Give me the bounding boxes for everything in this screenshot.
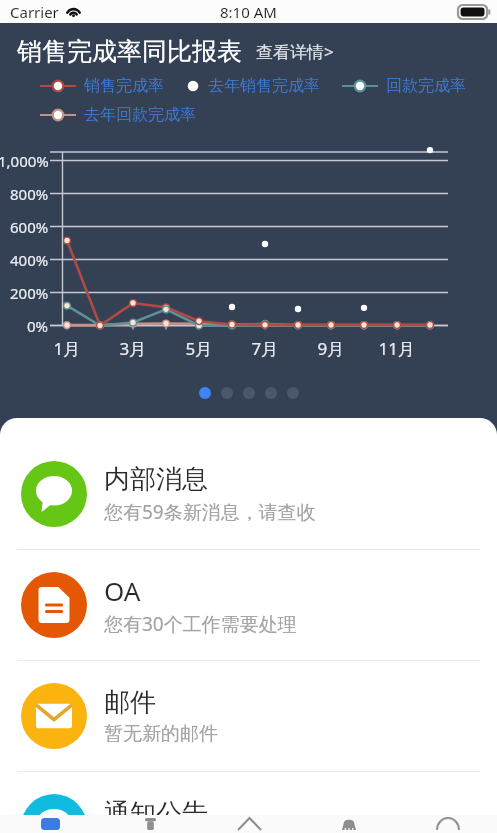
staticText: 回款完成率 bbox=[386, 76, 466, 96]
button[interactable]: 内部消息 bbox=[0, 439, 497, 549]
staticText: Carrier bbox=[10, 2, 59, 22]
button[interactable]: 邮件 bbox=[0, 661, 497, 771]
staticText: 销售完成率 bbox=[84, 76, 164, 96]
staticText: 去年回款完成率 bbox=[84, 105, 196, 125]
button[interactable]: 通知公告 bbox=[0, 772, 497, 833]
button[interactable]: Delete bbox=[100, 815, 200, 833]
staticText: 查看详情> bbox=[256, 40, 334, 63]
staticText: 您有59条新消息，请查收 bbox=[104, 499, 316, 525]
staticText: 您有30个工作需要处理 bbox=[104, 611, 297, 637]
staticText: 通知公告 bbox=[104, 797, 208, 830]
staticText: 内部消息 bbox=[104, 463, 208, 496]
button[interactable]: OA bbox=[0, 550, 497, 660]
button[interactable]: Recents bbox=[0, 815, 100, 833]
button[interactable]: Menu bbox=[398, 815, 497, 833]
staticText: 暂无新的邮件 bbox=[104, 722, 218, 746]
staticText: 邮件 bbox=[104, 686, 156, 719]
button[interactable]: Back bbox=[200, 815, 299, 833]
staticText: OA bbox=[104, 573, 141, 608]
staticText: 去年销售完成率 bbox=[208, 76, 320, 96]
staticText: 销售完成率同比报表 bbox=[17, 36, 242, 67]
button[interactable]: Home bbox=[299, 815, 398, 833]
staticText: 8:10 AM bbox=[220, 2, 277, 22]
button[interactable]: 查看详情> bbox=[256, 40, 334, 67]
